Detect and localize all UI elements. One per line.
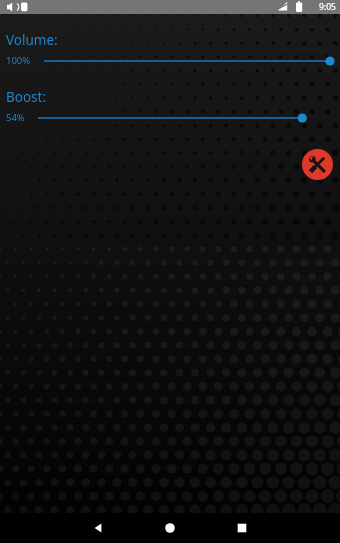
staticText: 9:05 xyxy=(319,1,336,13)
staticText: 100% xyxy=(6,54,31,67)
button[interactable]: Settings tools xyxy=(302,149,333,180)
button[interactable]: Home xyxy=(156,513,184,543)
button[interactable] xyxy=(42,50,338,72)
button[interactable]: Recent apps xyxy=(228,513,256,543)
staticText: Volume: xyxy=(6,31,58,49)
button[interactable] xyxy=(36,107,338,129)
staticText: Boost: xyxy=(6,88,47,106)
button[interactable]: Back xyxy=(84,513,112,543)
staticText: 54% xyxy=(6,111,25,124)
